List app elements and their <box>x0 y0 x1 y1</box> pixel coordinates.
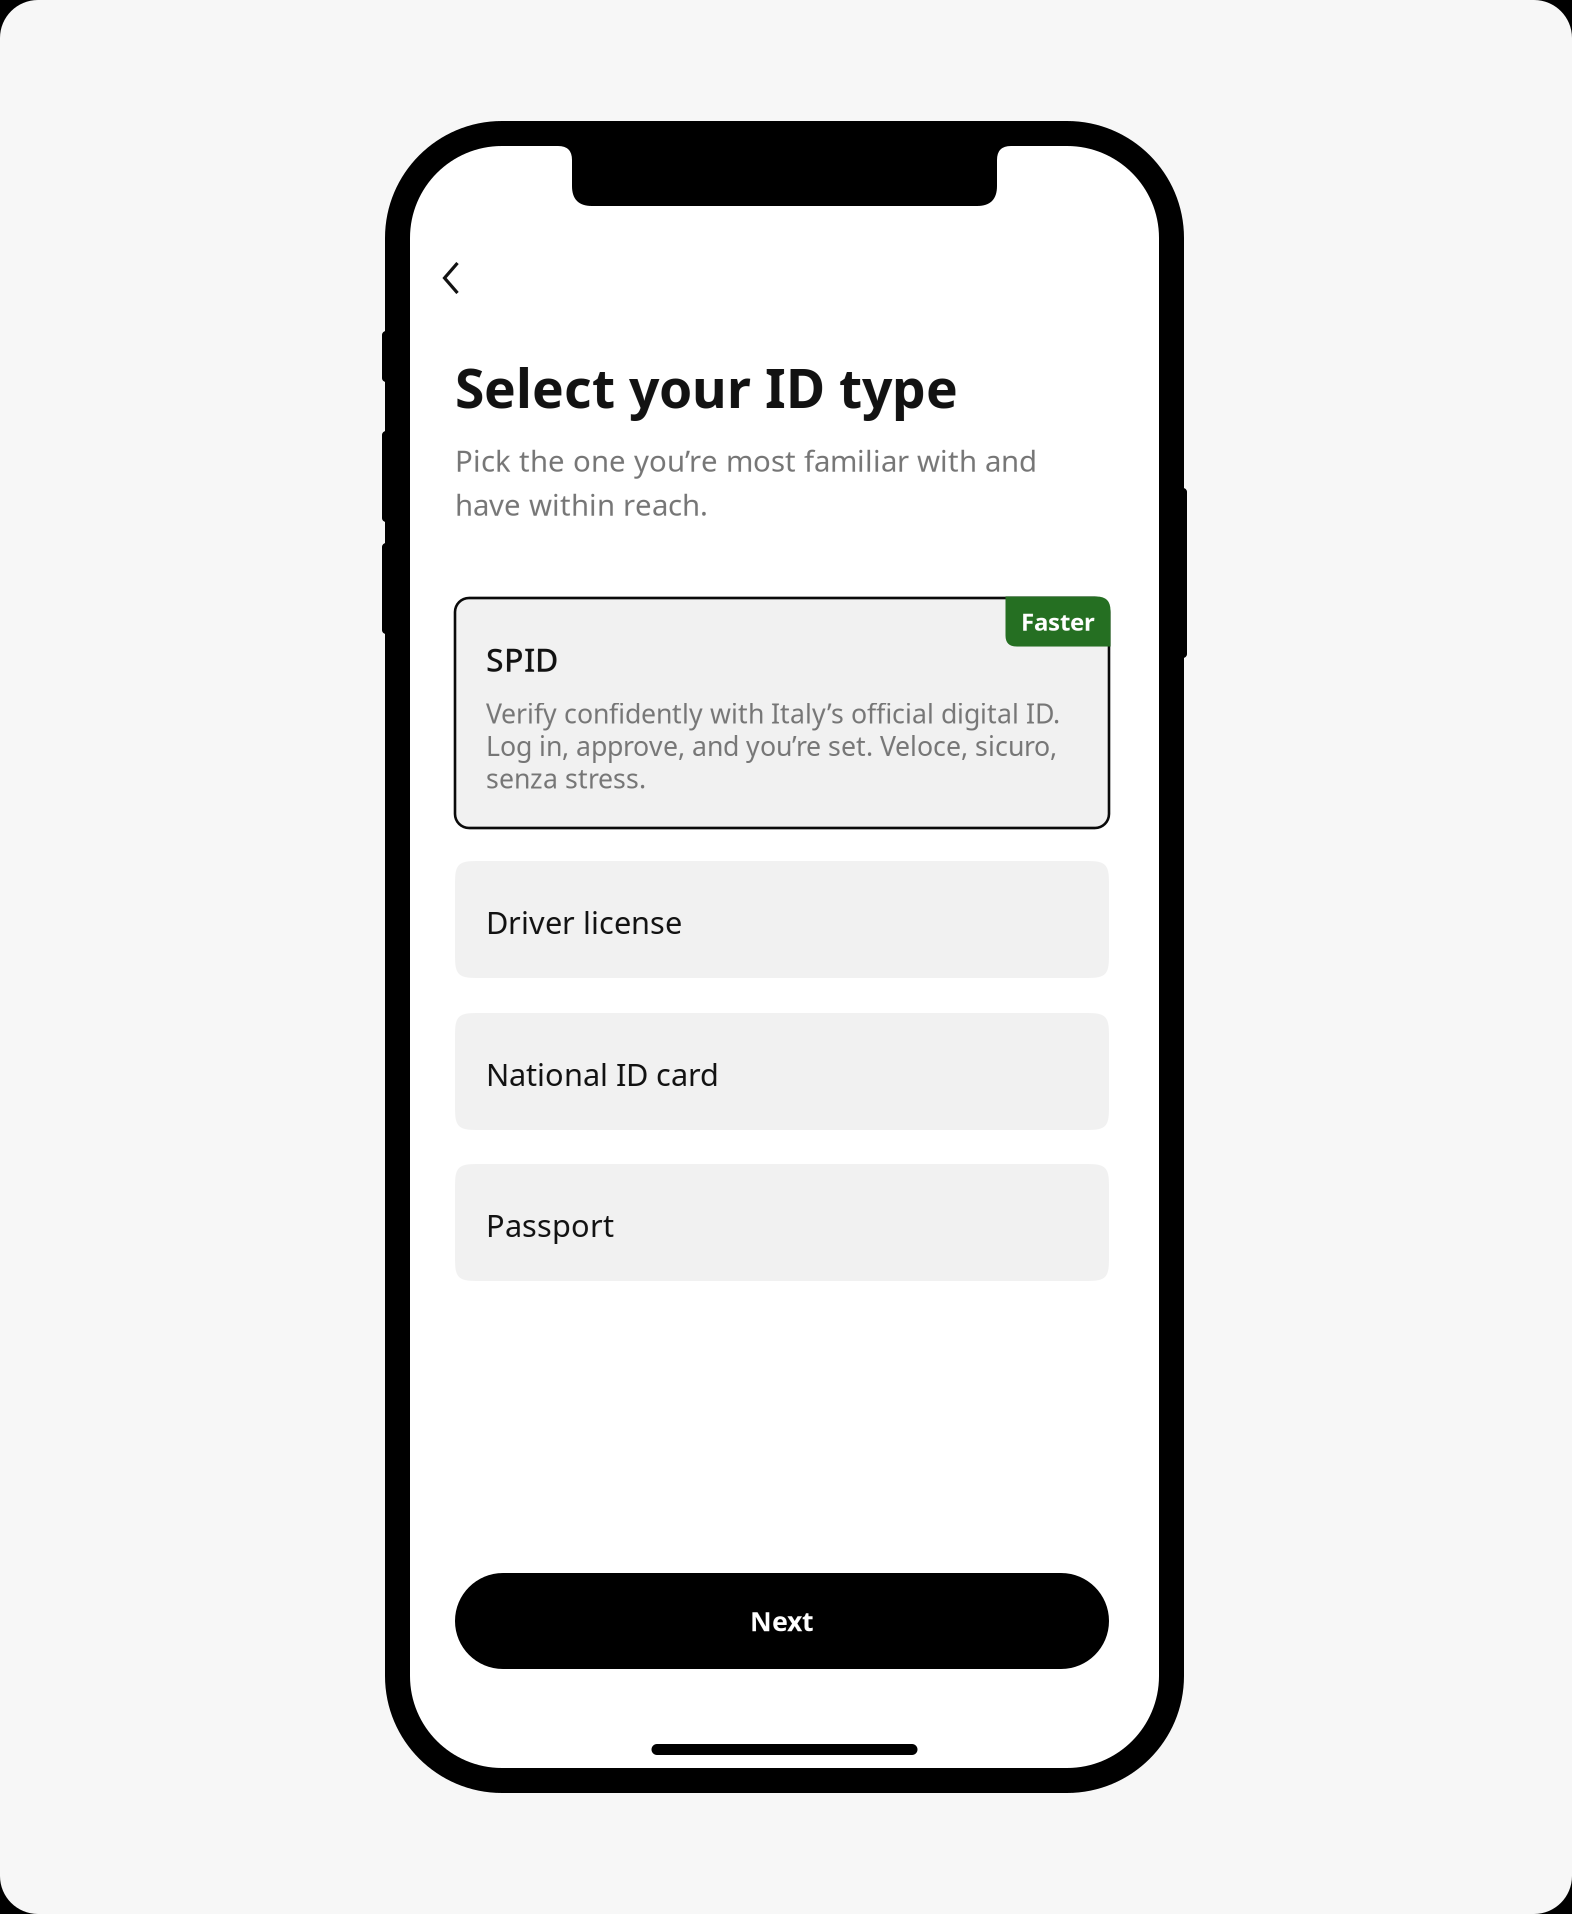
staticText: Pick the one you’re most familiar with a… <box>455 441 1037 524</box>
staticText: Driver license <box>486 902 682 942</box>
button[interactable]: SPID <box>455 598 1109 828</box>
button[interactable]: Back <box>418 245 484 311</box>
button[interactable]: Passport <box>455 1164 1109 1281</box>
staticText: Next <box>750 1603 814 1639</box>
staticText: Passport <box>486 1205 614 1245</box>
staticText: Faster <box>1021 606 1095 637</box>
button[interactable]: National ID card <box>455 1013 1109 1130</box>
staticText: SPID <box>486 638 558 680</box>
staticText: Verify confidently with Italy’s official… <box>486 695 1060 796</box>
staticText: Select your ID type <box>455 352 958 423</box>
staticText: National ID card <box>486 1054 719 1094</box>
button[interactable]: Driver license <box>455 861 1109 978</box>
button[interactable]: Next <box>455 1573 1109 1669</box>
